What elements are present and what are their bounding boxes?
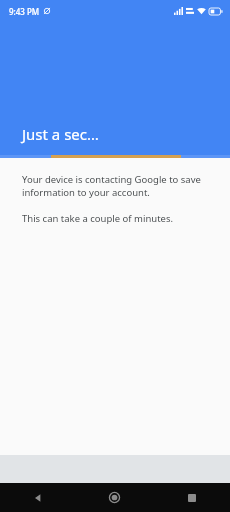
staticText: 9:43 PM — [9, 6, 40, 17]
button[interactable]: Home — [76, 483, 153, 512]
staticText: Just a sec… — [22, 124, 99, 144]
button[interactable]: Back — [0, 483, 76, 512]
staticText: This can take a couple of minutes. — [22, 212, 174, 225]
button[interactable]: Recent apps — [153, 483, 230, 512]
staticText: Your device is contacting Google to save… — [22, 173, 201, 199]
